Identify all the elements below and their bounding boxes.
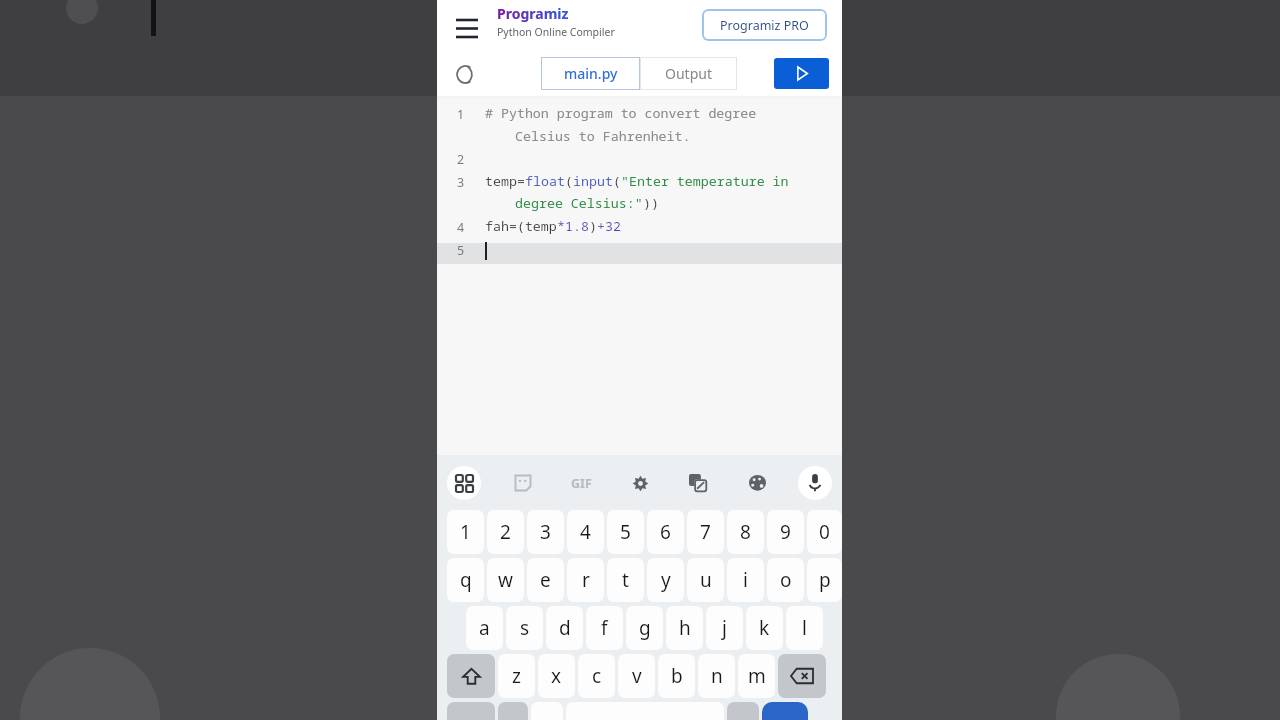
staticText: s: [520, 615, 530, 641]
staticText: 0: [819, 519, 830, 545]
staticText: temp: [485, 172, 517, 190]
button[interactable]: Emoji: [498, 702, 528, 720]
staticText: a: [479, 615, 490, 641]
button[interactable]: q: [447, 558, 484, 602]
button[interactable]: b: [658, 654, 695, 698]
button[interactable]: Run: [774, 58, 829, 89]
staticText: Programiz: [497, 4, 569, 23]
staticText: u: [700, 567, 712, 593]
staticText: GIF: [571, 475, 592, 492]
button[interactable]: Translate: [681, 466, 715, 500]
button[interactable]: r: [567, 558, 604, 602]
button[interactable]: n: [698, 654, 735, 698]
button[interactable]: p: [807, 558, 842, 602]
button[interactable]: Enter: [762, 702, 808, 720]
staticText: d: [559, 615, 571, 641]
staticText: =: [517, 172, 525, 190]
button[interactable]: j: [706, 606, 743, 650]
staticText: Programiz PRO: [720, 17, 809, 34]
staticText: t: [622, 567, 629, 593]
staticText: b: [671, 663, 683, 689]
button[interactable]: 2: [487, 510, 524, 554]
button[interactable]: x: [538, 654, 575, 698]
staticText: Celsius to Fahrenheit.: [515, 127, 691, 145]
button[interactable]: z: [498, 654, 535, 698]
button[interactable]: o: [767, 558, 804, 602]
button[interactable]: Settings: [623, 466, 657, 500]
button[interactable]: 4: [567, 510, 604, 554]
button[interactable]: 3: [527, 510, 564, 554]
button[interactable]: u: [687, 558, 724, 602]
button[interactable]: v: [618, 654, 655, 698]
button[interactable]: Programiz PRO: [702, 9, 827, 41]
staticText: fah=(temp: [485, 217, 557, 235]
staticText: 8: [740, 519, 751, 545]
staticText: y: [661, 567, 671, 593]
staticText: 6: [660, 519, 671, 545]
staticText: )): [643, 194, 659, 212]
button[interactable]: Themes: [740, 466, 774, 500]
staticText: 7: [700, 519, 711, 545]
button[interactable]: Period: [727, 702, 759, 720]
staticText: 4: [457, 219, 465, 236]
button[interactable]: 9: [767, 510, 804, 554]
button[interactable]: Comma: [531, 702, 563, 720]
button[interactable]: s: [506, 606, 543, 650]
staticText: (: [565, 172, 573, 190]
button[interactable]: 8: [727, 510, 764, 554]
staticText: 1: [457, 106, 465, 123]
button[interactable]: e: [527, 558, 564, 602]
staticText: w: [498, 567, 513, 593]
staticText: *: [557, 217, 565, 235]
staticText: 1: [460, 519, 471, 545]
staticText: x: [551, 663, 562, 689]
staticText: v: [632, 663, 642, 689]
staticText: c: [592, 663, 602, 689]
button[interactable]: l: [786, 606, 823, 650]
button[interactable]: Voice input: [798, 466, 832, 500]
button[interactable]: m: [738, 654, 775, 698]
button[interactable]: a: [466, 606, 503, 650]
staticText: j: [722, 615, 727, 641]
button[interactable]: main.py: [541, 57, 640, 90]
button[interactable]: Symbols: [447, 702, 495, 720]
button[interactable]: i: [727, 558, 764, 602]
button[interactable]: Backspace: [778, 654, 826, 698]
button[interactable]: 0: [807, 510, 842, 554]
button[interactable]: c: [578, 654, 615, 698]
button[interactable]: y: [647, 558, 684, 602]
staticText: h: [679, 615, 691, 641]
button[interactable]: Menu: [450, 8, 484, 42]
button[interactable]: 5: [607, 510, 644, 554]
staticText: 5: [620, 519, 631, 545]
staticText: o: [780, 567, 792, 593]
button[interactable]: w: [487, 558, 524, 602]
button[interactable]: 6: [647, 510, 684, 554]
staticText: k: [759, 615, 770, 641]
button[interactable]: Shift: [447, 654, 495, 698]
button[interactable]: f: [586, 606, 623, 650]
button[interactable]: h: [666, 606, 703, 650]
staticText: Output: [665, 64, 712, 83]
staticText: g: [639, 615, 651, 641]
button[interactable]: GIF: [564, 466, 598, 500]
button[interactable]: d: [546, 606, 583, 650]
staticText: q: [460, 567, 472, 593]
button[interactable]: Output: [640, 57, 737, 90]
button[interactable]: g: [626, 606, 663, 650]
staticText: z: [512, 663, 521, 689]
staticText: # Python program to convert degree: [485, 104, 757, 122]
button[interactable]: 1: [447, 510, 484, 554]
button[interactable]: Dark mode: [449, 58, 481, 90]
staticText: m: [748, 663, 766, 689]
button[interactable]: Apps: [447, 466, 481, 500]
button[interactable]: t: [607, 558, 644, 602]
staticText: 2: [457, 151, 465, 168]
button[interactable]: k: [746, 606, 783, 650]
button[interactable]: 7: [687, 510, 724, 554]
button[interactable]: Stickers: [506, 466, 540, 500]
staticText: 3: [457, 174, 465, 191]
staticText: (: [613, 172, 621, 190]
staticText: e: [540, 567, 551, 593]
